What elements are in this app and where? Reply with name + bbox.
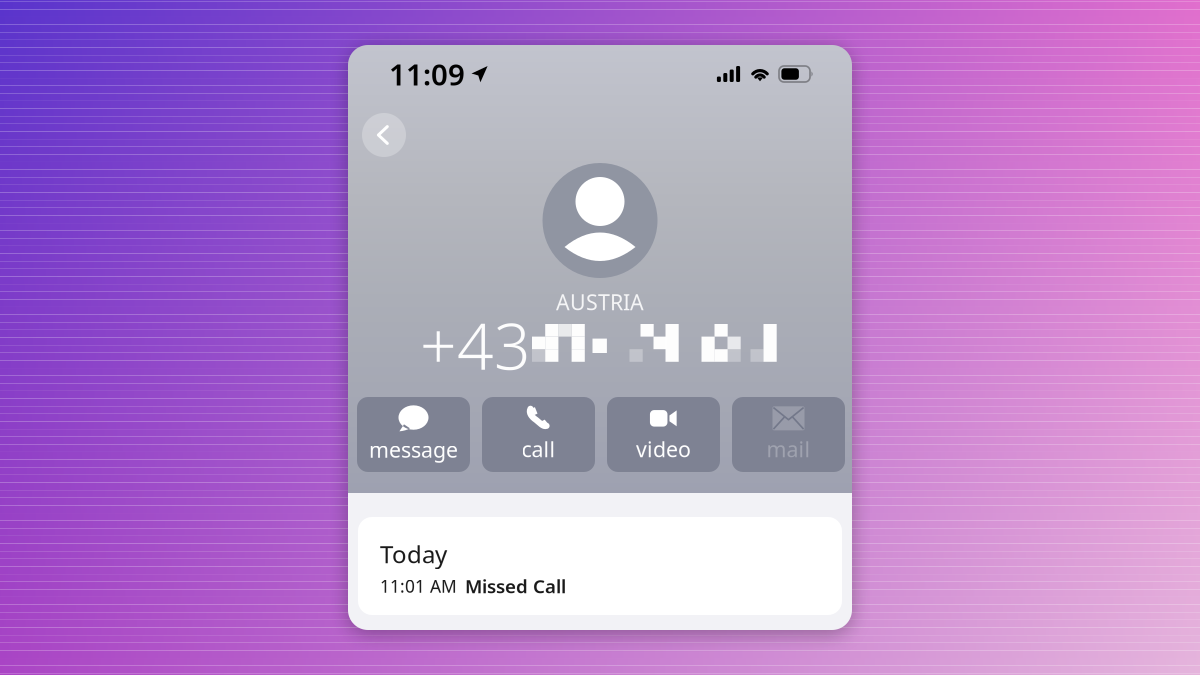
staticText: +43 [420, 302, 531, 387]
button[interactable]: message [357, 397, 470, 472]
staticText: video [636, 435, 691, 463]
staticText: 11:01 AM [380, 574, 457, 597]
staticText: mail [766, 435, 810, 463]
button[interactable]: call [482, 397, 595, 472]
button[interactable]: Today [358, 517, 842, 615]
button[interactable]: video [607, 397, 720, 472]
staticText: Missed Call [465, 574, 566, 598]
staticText: Today [380, 538, 447, 570]
staticText: call [521, 435, 555, 463]
button[interactable]: Back [362, 113, 406, 157]
button[interactable]: mail [732, 397, 845, 472]
staticText: message [369, 435, 458, 464]
staticText: AUSTRIA [556, 288, 644, 316]
staticText: 11:09 [389, 54, 465, 93]
